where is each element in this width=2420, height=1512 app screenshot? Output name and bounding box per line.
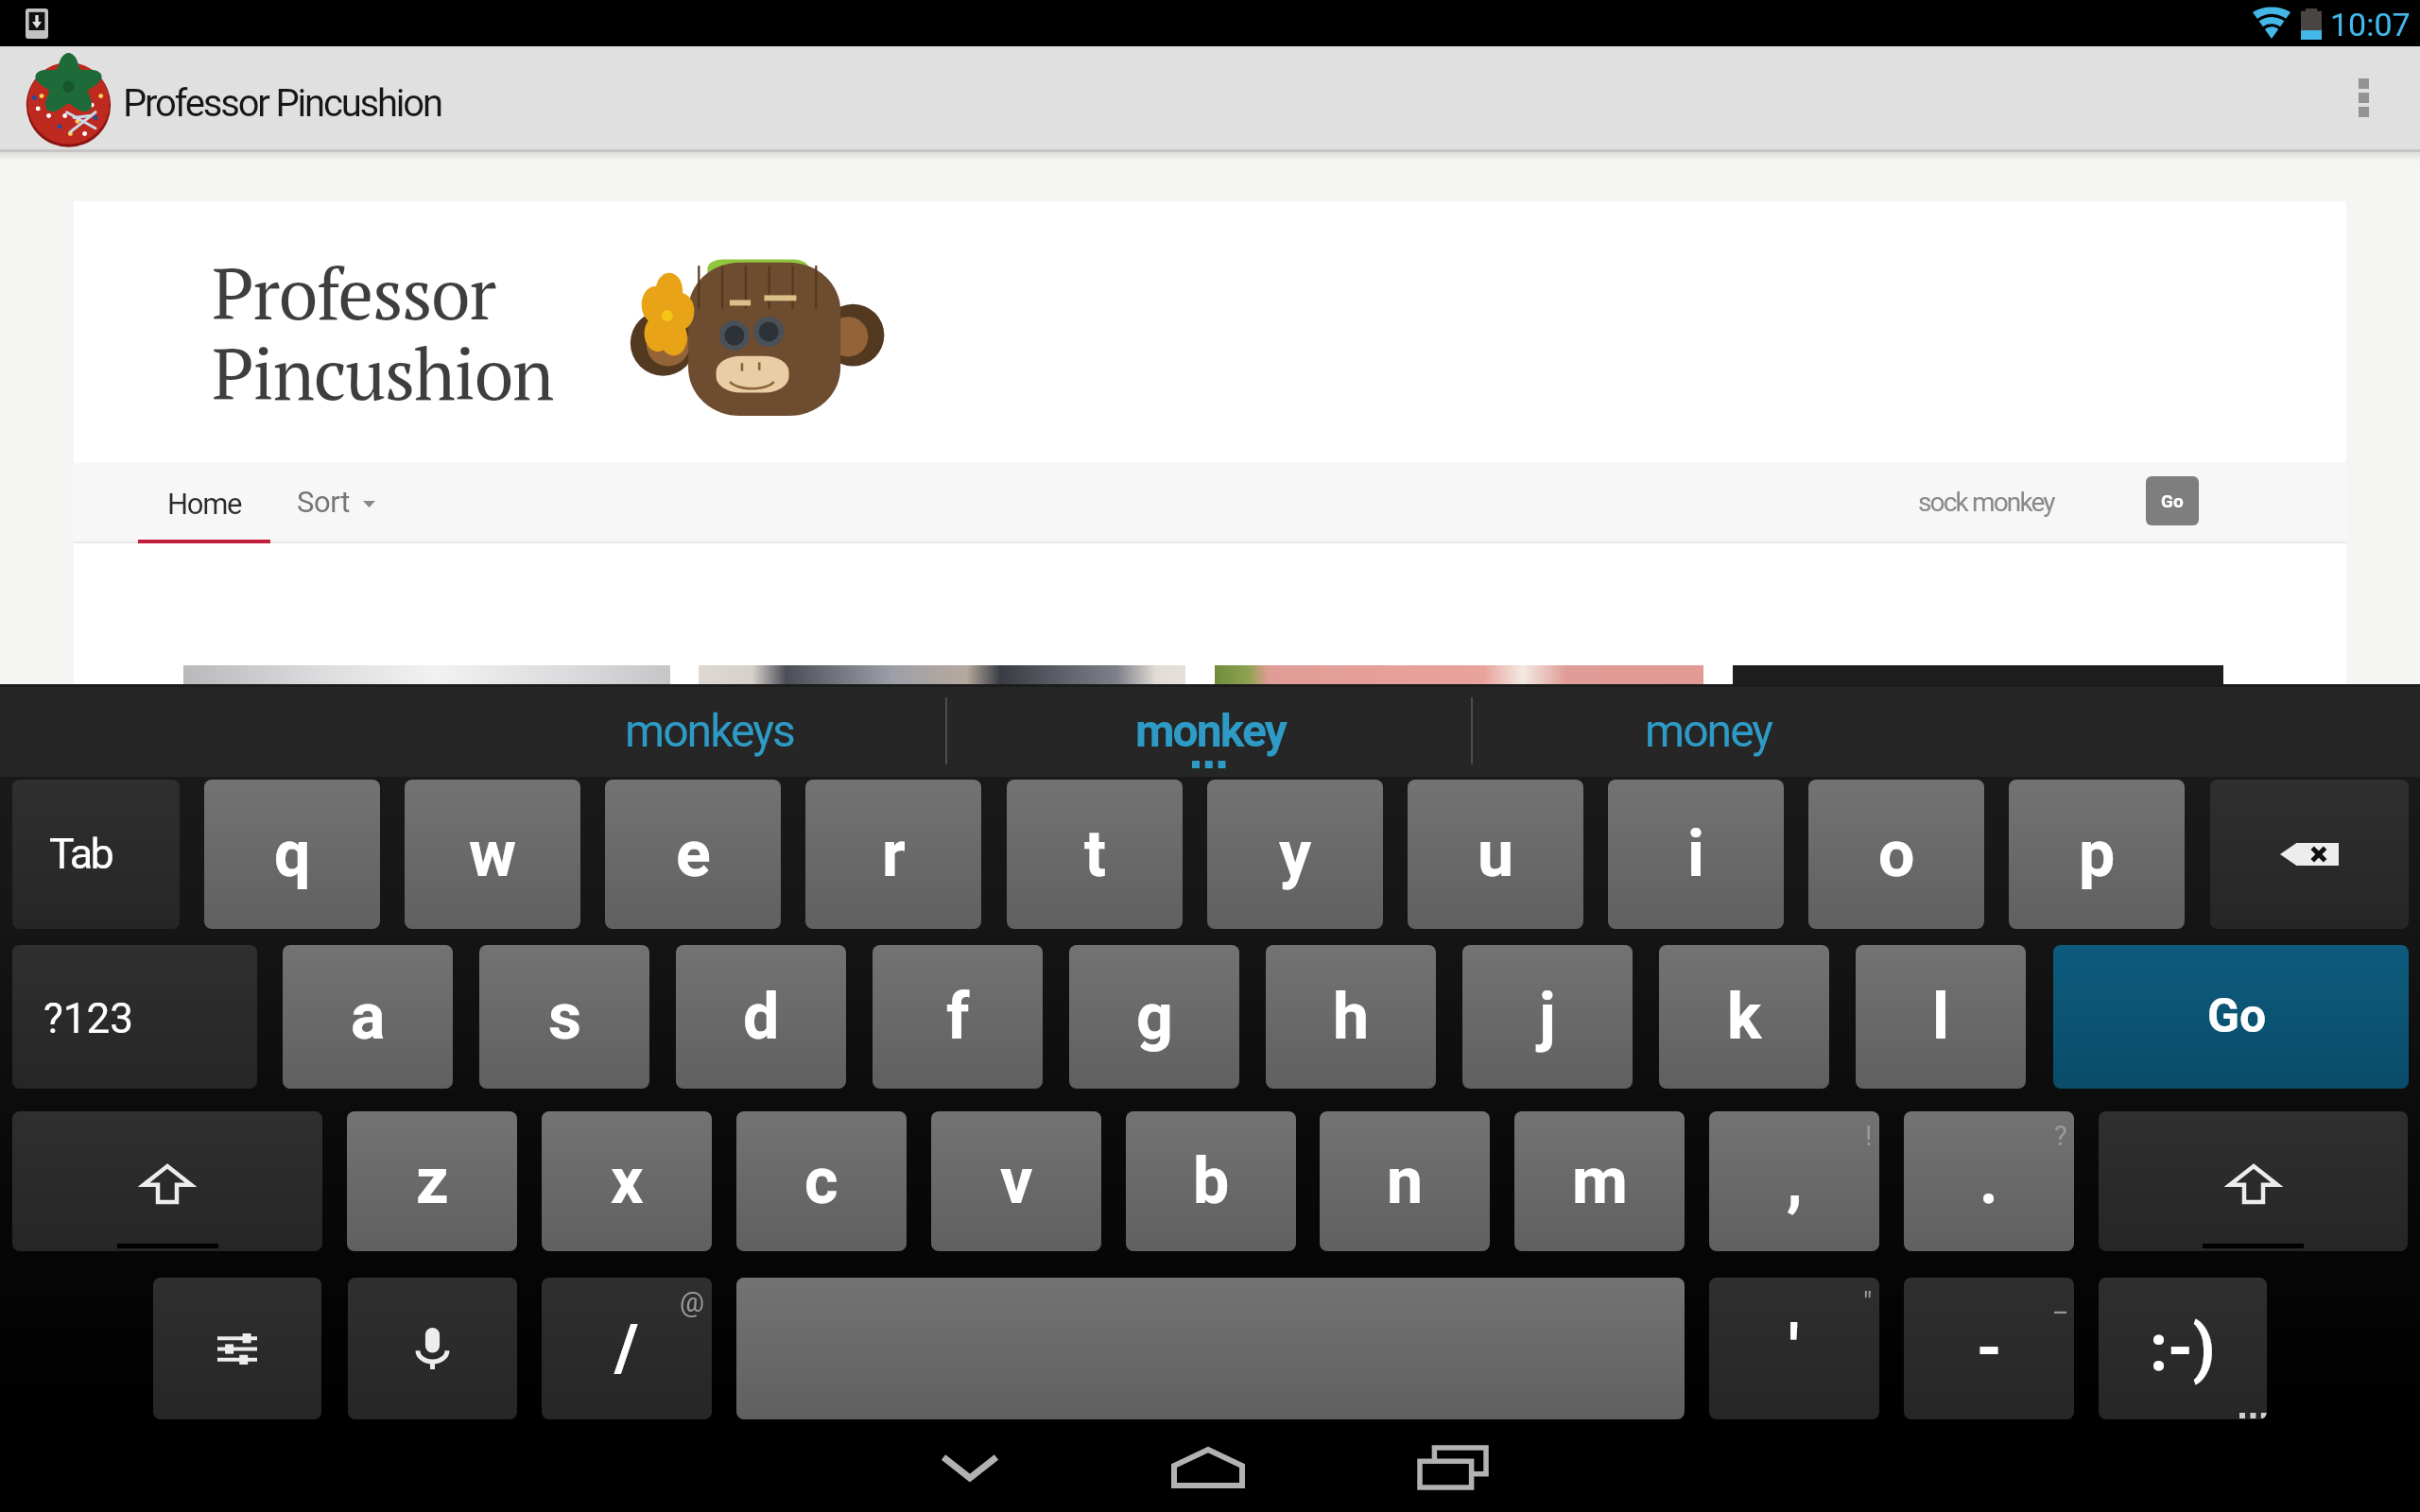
button[interactable]: Product 3	[1215, 665, 1703, 684]
button[interactable]: Home	[1161, 1422, 1255, 1512]
button[interactable]: ,	[1709, 1111, 1879, 1251]
staticText: Professor	[212, 246, 495, 339]
button[interactable]: Sort	[297, 462, 382, 541]
button[interactable]: /	[542, 1278, 712, 1419]
button[interactable]: -	[1904, 1278, 2074, 1419]
staticText: y	[1279, 816, 1312, 892]
staticText: !	[1865, 1120, 1873, 1152]
staticText: g	[1136, 979, 1173, 1055]
staticText: b	[1193, 1143, 1230, 1219]
button[interactable]: i	[1608, 780, 1784, 929]
button[interactable]: money	[1472, 687, 1945, 774]
staticText: p	[2079, 816, 2116, 892]
button[interactable]: w	[405, 780, 580, 929]
staticText: i	[1687, 816, 1705, 892]
button[interactable]: Backspace	[2210, 780, 2409, 929]
button[interactable]: Go	[2053, 945, 2409, 1089]
button[interactable]: x	[542, 1111, 712, 1251]
staticText: sock monkey	[1918, 487, 2054, 518]
staticText: -	[1977, 1311, 2002, 1386]
staticText: u	[1478, 816, 1514, 892]
staticText: k	[1727, 979, 1762, 1055]
button[interactable]: Product 2	[699, 665, 1185, 684]
staticText: Home	[167, 487, 242, 521]
staticText: "	[1863, 1286, 1873, 1318]
staticText: w	[469, 816, 516, 892]
staticText: j	[1539, 979, 1556, 1055]
staticText: :-)	[2150, 1311, 2216, 1386]
staticText: f	[946, 979, 970, 1055]
button[interactable]: k	[1659, 945, 1829, 1089]
button[interactable]: c	[736, 1111, 907, 1251]
button[interactable]: g	[1069, 945, 1239, 1089]
button[interactable]	[0, 46, 482, 150]
button[interactable]: l	[1856, 945, 2026, 1089]
button[interactable]: v	[931, 1111, 1101, 1251]
button[interactable]: n	[1320, 1111, 1490, 1251]
button[interactable]: More options	[2325, 46, 2401, 149]
staticText: h	[1333, 979, 1370, 1055]
button[interactable]: :-)	[2099, 1278, 2267, 1419]
staticText: o	[1878, 816, 1915, 892]
button[interactable]: s	[479, 945, 649, 1089]
other: Download	[26, 9, 48, 39]
button[interactable]: Shift	[2099, 1111, 2408, 1251]
button[interactable]: Product 4	[1733, 665, 2223, 684]
button[interactable]: monkeys	[473, 687, 945, 774]
button[interactable]: ?123	[12, 945, 257, 1089]
staticText: v	[1000, 1143, 1033, 1219]
button[interactable]: Voice input	[348, 1278, 517, 1419]
button[interactable]: h	[1266, 945, 1436, 1089]
button[interactable]: Product 1	[183, 665, 670, 684]
staticText: d	[743, 979, 780, 1055]
staticText: n	[1387, 1143, 1424, 1219]
staticText: ,	[1787, 1143, 1803, 1219]
staticText: monkey	[1135, 704, 1286, 757]
staticText: 10:07	[2330, 6, 2411, 43]
button[interactable]: d	[676, 945, 846, 1089]
button[interactable]: p	[2009, 780, 2185, 929]
button[interactable]: Tab	[12, 780, 180, 929]
button[interactable]: y	[1207, 780, 1383, 929]
other: Battery	[2301, 9, 2322, 40]
staticText: @	[680, 1286, 705, 1318]
button[interactable]: u	[1408, 780, 1583, 929]
button[interactable]: Space	[736, 1278, 1685, 1419]
staticText: l	[1932, 979, 1950, 1055]
button[interactable]: Shift	[12, 1111, 322, 1251]
button[interactable]: Home	[138, 464, 270, 543]
button[interactable]: f	[873, 945, 1043, 1089]
staticText: Tab	[49, 829, 112, 879]
button[interactable]: e	[605, 780, 781, 929]
button[interactable]: q	[204, 780, 380, 929]
button[interactable]: a	[283, 945, 453, 1089]
button[interactable]: j	[1462, 945, 1633, 1089]
staticText: Pincushion	[212, 326, 553, 420]
staticText: Go	[2207, 988, 2267, 1044]
staticText: q	[274, 816, 311, 892]
staticText: .	[1979, 1143, 1998, 1219]
staticText: money	[1645, 704, 1772, 757]
button[interactable]: Hide keyboard	[923, 1422, 1017, 1512]
button[interactable]: .	[1904, 1111, 2074, 1251]
button[interactable]: r	[805, 780, 981, 929]
staticText: e	[676, 816, 711, 892]
button[interactable]: monkey	[948, 687, 1472, 774]
staticText: m	[1572, 1143, 1628, 1219]
staticText: _	[2054, 1286, 2067, 1318]
staticText: '	[1789, 1311, 1800, 1386]
button[interactable]: t	[1007, 780, 1183, 929]
button[interactable]: Keyboard settings	[153, 1278, 321, 1419]
button[interactable]: z	[347, 1111, 517, 1251]
button[interactable]: Recent apps	[1406, 1422, 1500, 1512]
staticText: Sort	[297, 485, 350, 519]
staticText: Professor Pincushion	[123, 81, 441, 126]
staticText: ?	[2054, 1120, 2067, 1152]
button[interactable]: o	[1808, 780, 1984, 929]
button[interactable]: b	[1126, 1111, 1296, 1251]
button[interactable]: Go	[2146, 476, 2199, 525]
button[interactable]: m	[1514, 1111, 1685, 1251]
staticText: t	[1084, 816, 1106, 892]
staticText: monkeys	[625, 704, 794, 757]
button[interactable]: '	[1709, 1278, 1879, 1419]
